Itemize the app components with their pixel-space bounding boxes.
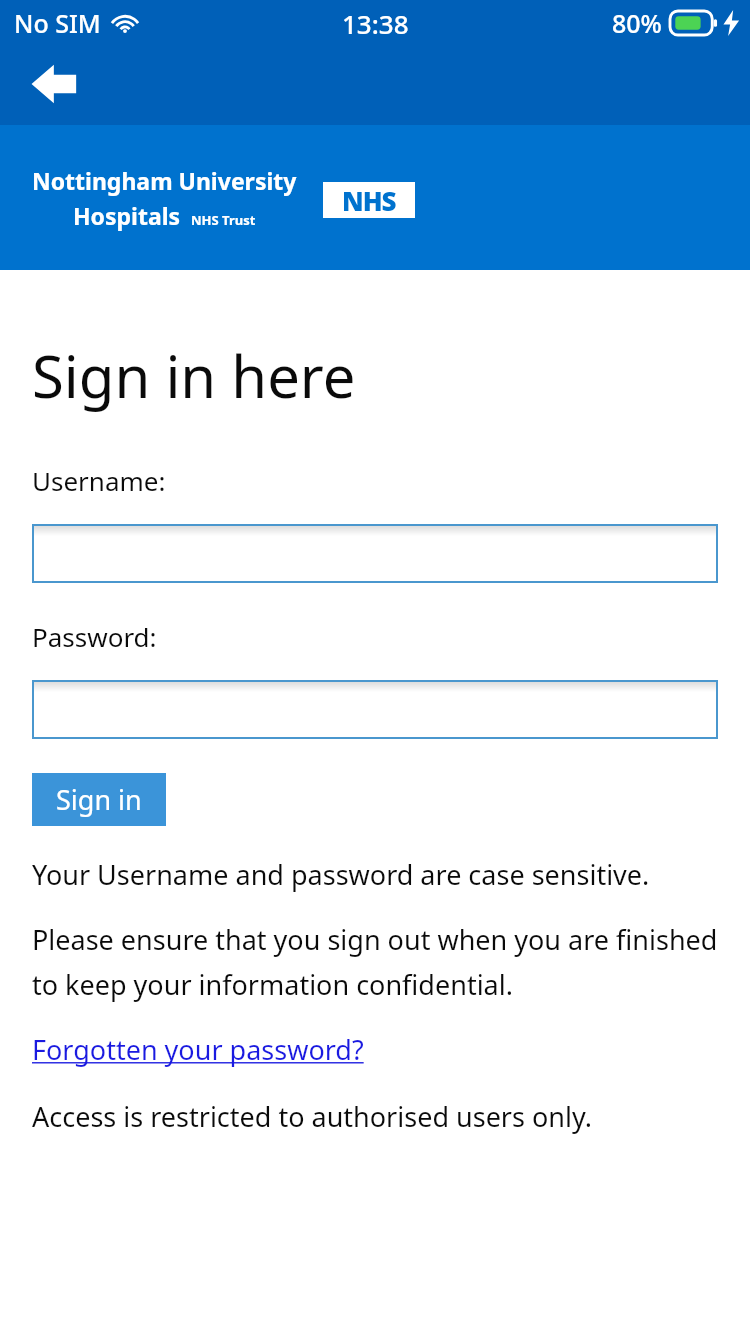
staticText: Username: <box>32 463 166 498</box>
staticText: Nottingham University <box>32 165 297 196</box>
staticText: Please ensure that you sign out when you… <box>32 921 718 1003</box>
staticText: 13:38 <box>342 6 409 41</box>
button[interactable]: Forgotten your password? <box>32 1031 364 1068</box>
button[interactable] <box>32 680 718 739</box>
staticText: NHS Trust <box>191 211 256 229</box>
staticText: Hospitals <box>73 200 181 231</box>
staticText: Access is restricted to authorised users… <box>32 1098 592 1135</box>
button[interactable]: Sign in <box>32 773 166 826</box>
staticText: Password: <box>32 619 157 654</box>
staticText: No SIM <box>14 6 101 40</box>
staticText: Forgotten your password? <box>32 1031 364 1068</box>
staticText: Your Username and password are case sens… <box>32 856 650 893</box>
staticText: 80% <box>612 6 662 40</box>
button[interactable]: Back <box>20 52 92 116</box>
staticText: Sign in <box>56 781 142 818</box>
button[interactable] <box>32 524 718 583</box>
staticText: NHS <box>342 183 396 218</box>
staticText: Sign in here <box>32 336 356 415</box>
